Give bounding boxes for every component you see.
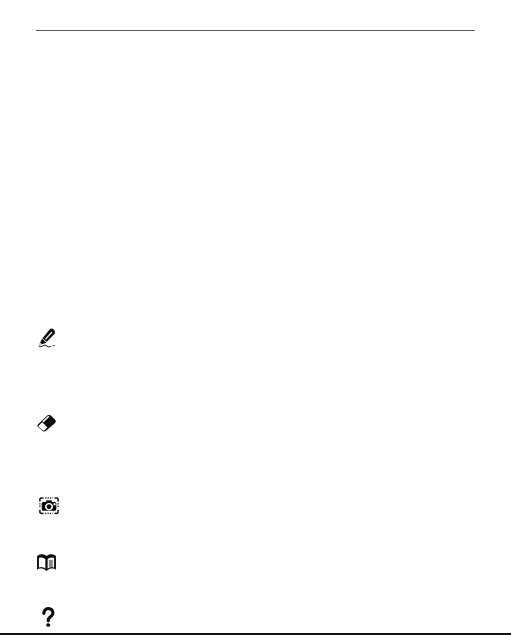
button[interactable]: Erase (36, 415, 475, 497)
button[interactable]: Help (36, 608, 475, 635)
button[interactable]: Library (36, 554, 475, 608)
button[interactable]: Scan (36, 497, 475, 554)
staticText: Help (63, 608, 109, 635)
button[interactable]: Markup (36, 328, 475, 415)
